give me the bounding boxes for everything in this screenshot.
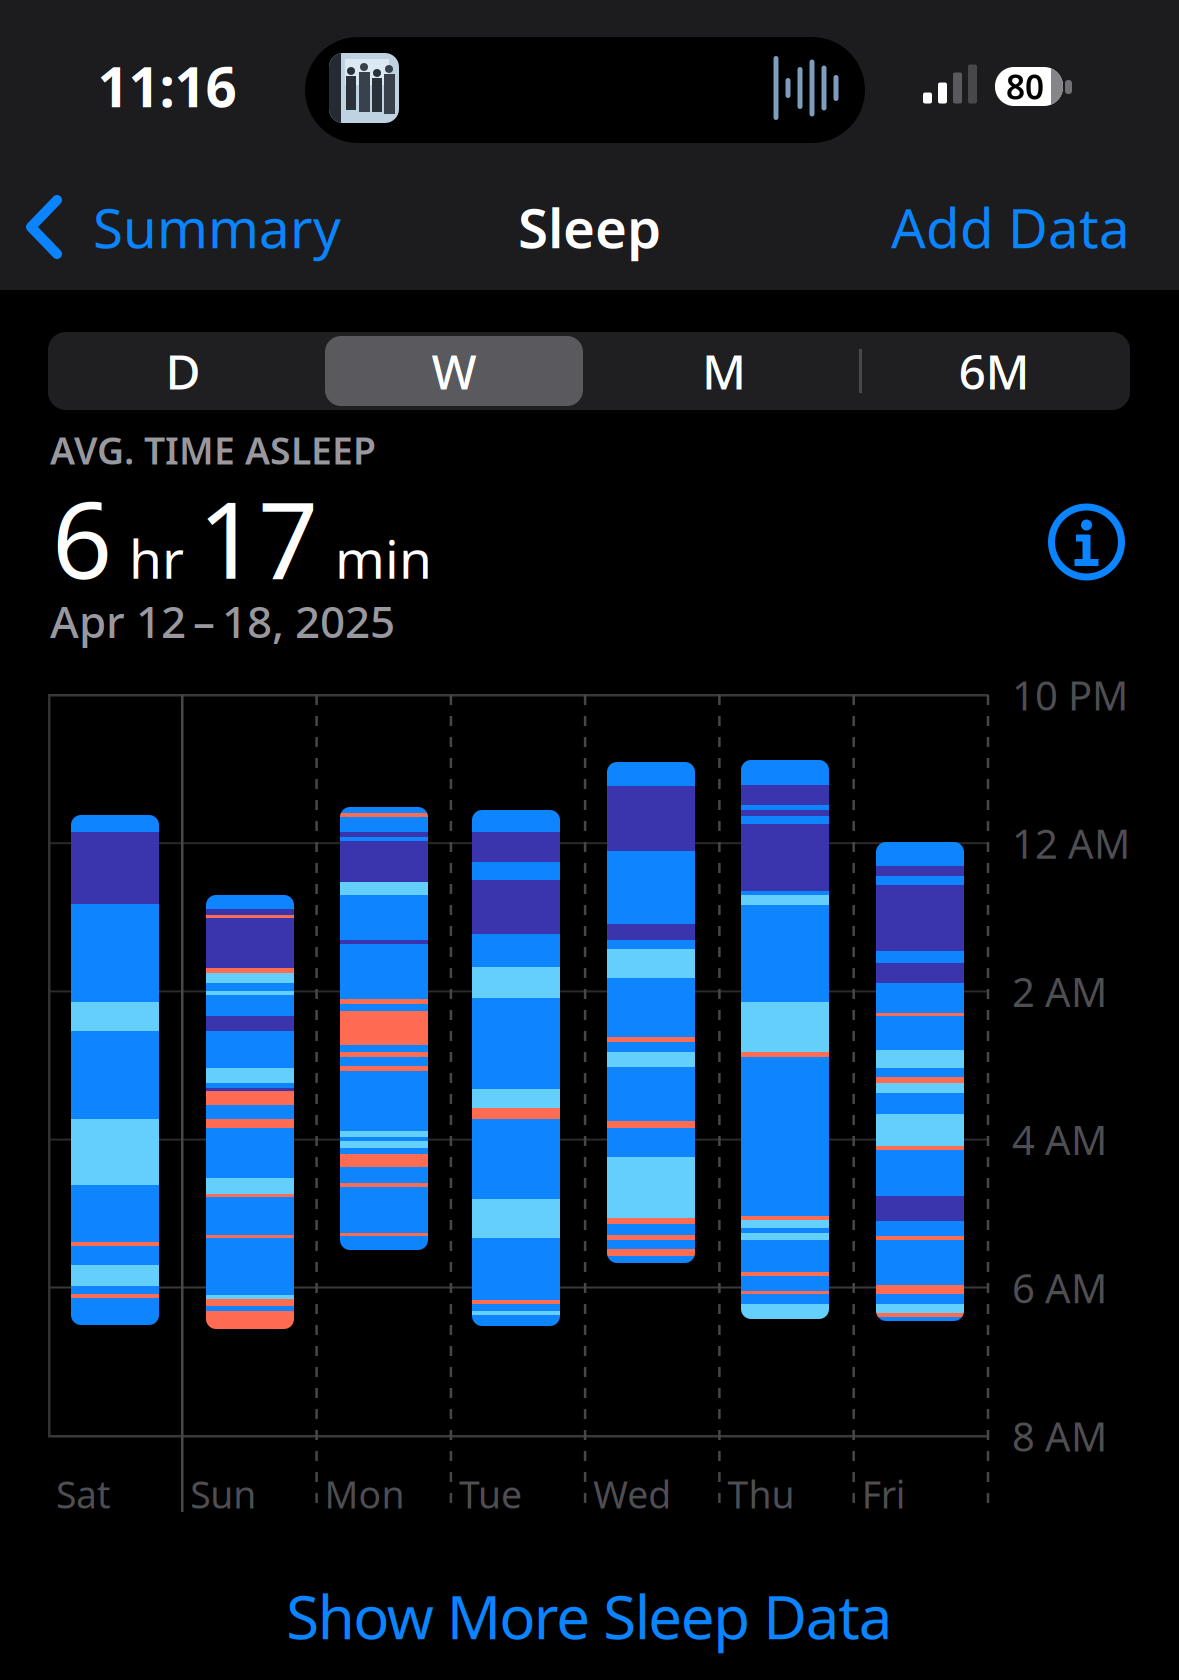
button[interactable]: 6M: [859, 332, 1129, 410]
staticText: Summary: [93, 191, 341, 263]
staticText: 12 AM: [1012, 817, 1130, 870]
staticText: Sun: [190, 1469, 256, 1519]
staticText: Thu: [727, 1469, 794, 1519]
staticText: 6M: [958, 339, 1029, 403]
staticText: Add Data: [891, 191, 1130, 263]
button[interactable]: Back to Summary: [20, 194, 400, 260]
staticText: Show More Sleep Data: [286, 1576, 893, 1656]
button[interactable]: D: [48, 332, 318, 410]
staticText: Fri: [862, 1469, 906, 1519]
button[interactable]: Show More Sleep Data: [286, 1576, 893, 1656]
staticText: Wed: [593, 1469, 671, 1519]
staticText: M: [702, 339, 746, 403]
button[interactable]: About Sleep Data: [1048, 504, 1124, 580]
staticText: Tue: [459, 1469, 522, 1519]
staticText: 80: [1006, 64, 1044, 109]
staticText: 8 AM: [1012, 1409, 1107, 1462]
staticText: 11:16: [97, 50, 236, 122]
button[interactable]: W: [319, 332, 589, 410]
staticText: Sleep: [518, 191, 661, 263]
staticText: W: [431, 339, 476, 403]
staticText: AVG. TIME ASLEEP: [50, 425, 376, 475]
staticText: 10 PM: [1012, 668, 1128, 721]
button[interactable]: Add Data: [830, 197, 1130, 257]
staticText: 2 AM: [1012, 965, 1107, 1018]
staticText: 4 AM: [1012, 1113, 1107, 1166]
staticText: 6 hr 17 min: [52, 468, 432, 608]
staticText: D: [165, 339, 200, 403]
staticText: Apr 12 – 18, 2025: [50, 592, 395, 650]
button[interactable]: M: [589, 332, 859, 410]
staticText: Sat: [56, 1469, 110, 1519]
staticText: 6 AM: [1012, 1261, 1107, 1314]
staticText: Mon: [325, 1469, 405, 1519]
